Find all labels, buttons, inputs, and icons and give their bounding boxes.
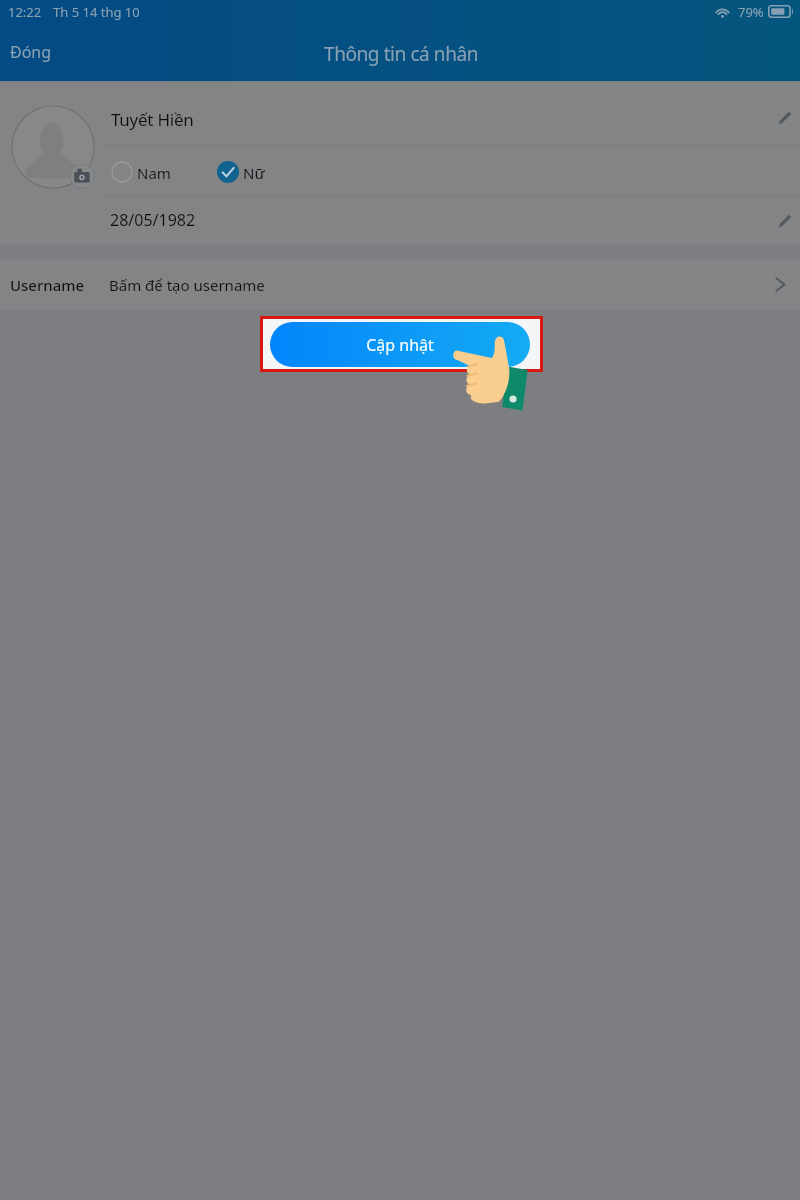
staticText: Thông tin cá nhân (324, 41, 479, 67)
staticText: Nam (137, 163, 171, 183)
staticText: 79% (738, 3, 764, 21)
staticText: 28/05/1982 (110, 209, 196, 231)
button[interactable]: Nam (107, 155, 173, 191)
button[interactable]: Cập nhật (270, 322, 530, 367)
staticText: Bấm để tạo username (109, 275, 265, 295)
staticText: Username (10, 275, 85, 295)
button[interactable]: Edit date of birth (771, 207, 799, 235)
staticText: Cập nhật (366, 334, 434, 356)
staticText: 12:22 (8, 3, 42, 21)
staticText: Th 5 14 thg 10 (53, 3, 140, 21)
button[interactable]: Username (0, 259, 800, 310)
button[interactable]: Change profile photo (11, 105, 95, 189)
button[interactable]: Edit name (771, 104, 799, 132)
button[interactable]: Nữ (213, 155, 271, 191)
staticText: Nữ (243, 163, 265, 183)
button[interactable]: Đóng (0, 36, 70, 70)
staticText: Tuyết Hiền (111, 108, 194, 131)
staticText: Đóng (10, 41, 52, 63)
